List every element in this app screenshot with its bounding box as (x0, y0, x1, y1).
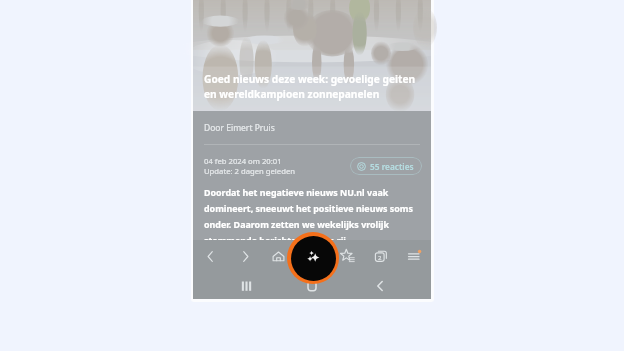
button[interactable]: Home (264, 240, 292, 273)
button[interactable]: Tabs (366, 240, 394, 273)
button[interactable]: Menu (400, 240, 428, 273)
button[interactable]: Recent apps (234, 275, 258, 296)
staticText: 04 feb 2024 om 20:01 (204, 156, 282, 166)
staticText: Doordat het negatieve nieuws NU.nl vaak … (204, 186, 413, 246)
button[interactable]: Bookmarks (333, 240, 361, 273)
button[interactable]: Forward (231, 240, 259, 273)
button[interactable]: Home (300, 275, 324, 296)
staticText: Goed nieuws deze week: gevoelige geiten … (204, 72, 416, 101)
button[interactable]: Back (196, 240, 224, 273)
button[interactable]: 55 reacties (350, 157, 422, 175)
button[interactable]: Back (368, 275, 392, 296)
button[interactable]: Galaxy AI (287, 232, 339, 284)
staticText: Door Eimert Pruis (204, 122, 275, 134)
staticText: Update: 2 dagen geleden (204, 166, 296, 176)
staticText: 2 (378, 254, 382, 262)
staticText: 55 reacties (370, 161, 414, 172)
